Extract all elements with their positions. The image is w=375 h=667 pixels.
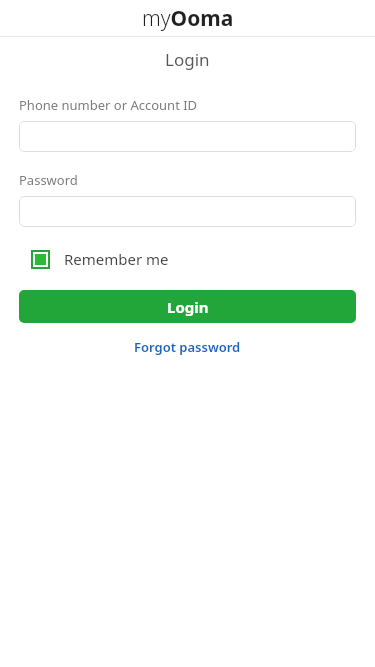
button[interactable]: Forgot password <box>128 336 247 358</box>
staticText: Forgot password <box>134 338 241 356</box>
button[interactable]: Remember me checkbox, checked <box>19 246 169 272</box>
button[interactable]: Login <box>19 290 356 323</box>
button[interactable]: Password <box>19 196 356 227</box>
staticText: Login <box>167 297 209 317</box>
staticText: Phone number or Account ID <box>19 96 198 114</box>
staticText: myOoma <box>142 4 234 33</box>
staticText: Password <box>19 171 78 189</box>
button[interactable]: Phone number or Account ID <box>19 121 356 152</box>
staticText: Remember me <box>64 249 169 269</box>
staticText: Login <box>165 48 210 71</box>
